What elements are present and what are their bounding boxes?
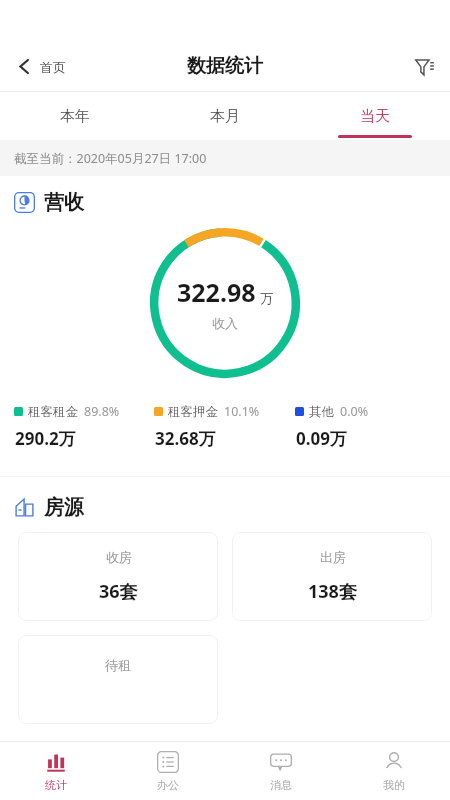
staticText: 当天 <box>360 107 390 126</box>
staticText: 36套 <box>99 579 138 604</box>
button[interactable]: Filter <box>399 47 450 86</box>
button[interactable]: 统计 <box>0 742 112 800</box>
staticText: 数据统计 <box>187 54 263 78</box>
button[interactable]: 首页 <box>0 50 78 83</box>
staticText: 出房 <box>320 549 346 565</box>
button[interactable]: 办公 <box>112 742 224 800</box>
staticText: 办公 <box>157 778 179 792</box>
staticText: 首页 <box>40 59 66 75</box>
button[interactable]: 本年 <box>0 92 150 140</box>
staticText: 房源 <box>44 495 84 520</box>
button[interactable]: 消息 <box>224 742 337 800</box>
button[interactable]: 当天 <box>300 92 450 140</box>
staticText: 10.1% <box>224 403 260 420</box>
button[interactable]: 出房 <box>232 532 432 621</box>
staticText: 营收 <box>44 190 84 215</box>
button[interactable]: 我的 <box>337 742 450 800</box>
staticText: 收入 <box>212 315 238 331</box>
staticText: 消息 <box>270 778 292 792</box>
staticText: 138套 <box>308 579 357 604</box>
staticText: 89.8% <box>84 403 120 420</box>
staticText: 待租 <box>105 657 131 673</box>
staticText: 租客租金 <box>28 404 78 420</box>
staticText: 收房 <box>106 549 132 565</box>
staticText: 其他 <box>309 404 334 420</box>
staticText: 290.2万 <box>15 427 76 450</box>
button[interactable]: 收房 <box>18 532 218 621</box>
staticText: 我的 <box>383 778 405 792</box>
staticText: 统计 <box>45 778 67 792</box>
staticText: 本月 <box>210 107 240 126</box>
staticText: 万 <box>260 290 273 306</box>
staticText: 32.68万 <box>155 427 216 450</box>
button[interactable]: 本月 <box>150 92 300 140</box>
button[interactable]: 待租 <box>18 635 218 724</box>
staticText: 租客押金 <box>168 404 218 420</box>
staticText: 0.0% <box>340 403 369 420</box>
staticText: 截至当前：2020年05月27日 17:00 <box>14 150 207 167</box>
staticText: 322.98 <box>177 275 256 309</box>
staticText: 本年 <box>60 107 90 126</box>
staticText: 0.09万 <box>296 427 347 450</box>
